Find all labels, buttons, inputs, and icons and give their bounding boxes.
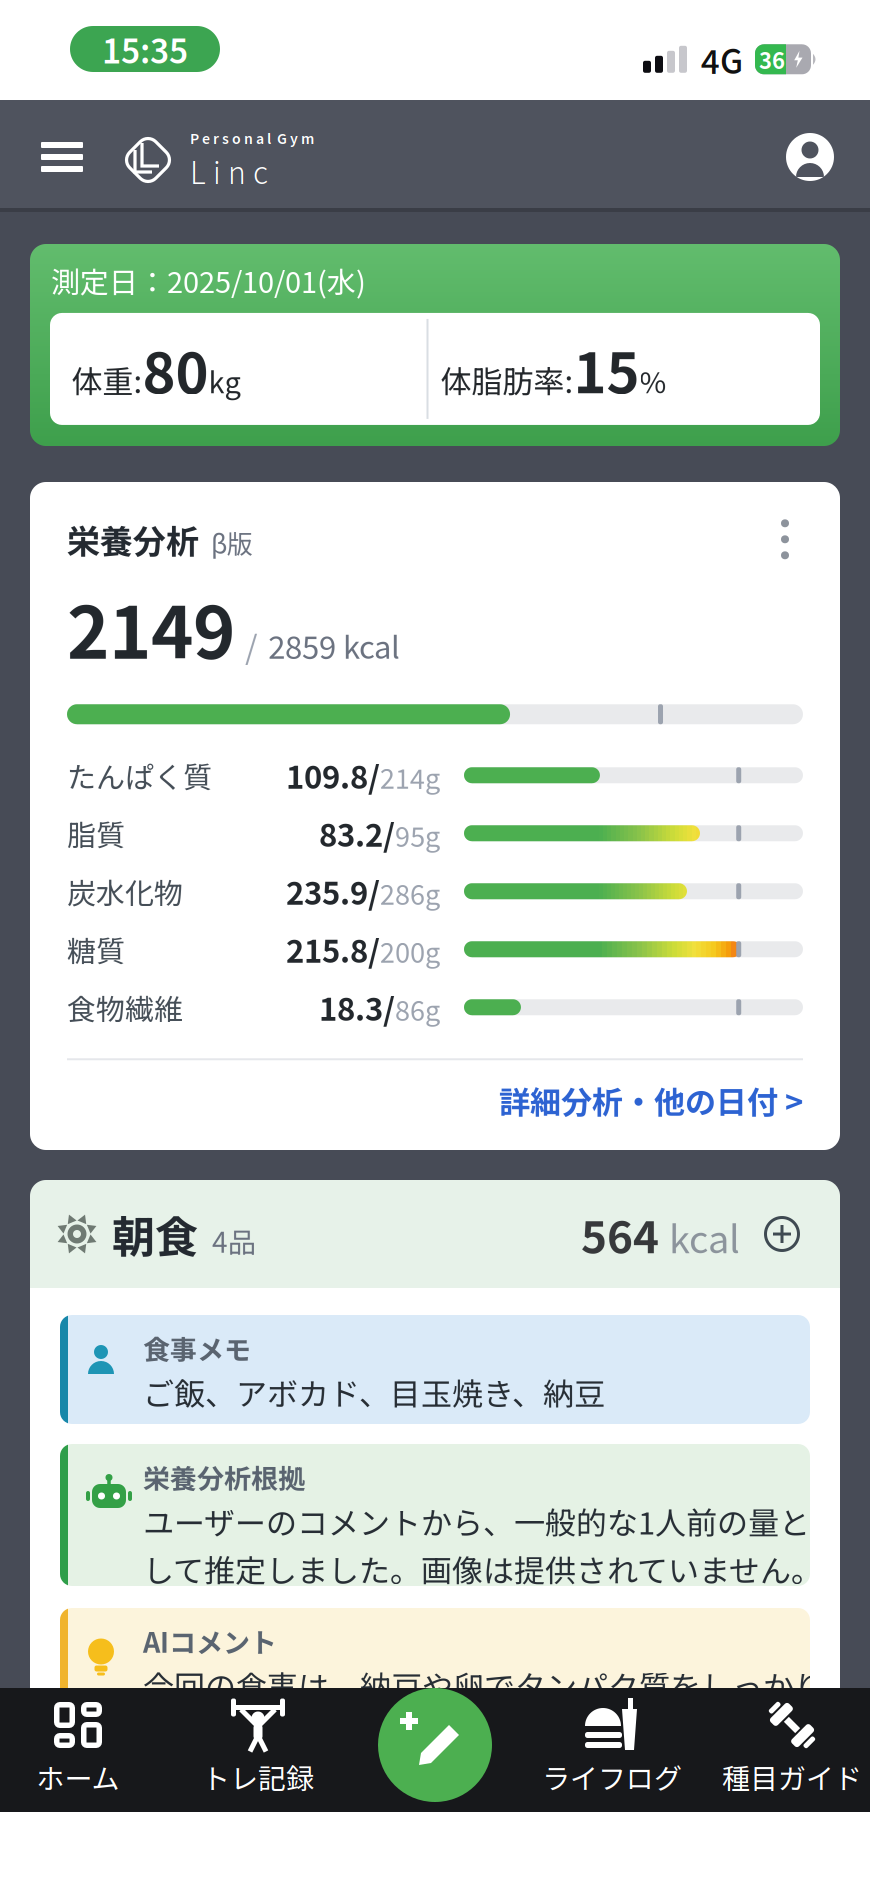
staticText: 体脂肪率:	[440, 358, 573, 402]
staticText: L i n c	[190, 150, 268, 192]
staticText: 今回の食事は、納豆や卵でタンパク質をしっかり とれています。	[143, 1663, 825, 1755]
staticText: ご飯、アボカド、目玉焼き、納豆	[143, 1370, 605, 1414]
button[interactable]: Menu	[0, 139, 83, 169]
staticText: 214g	[380, 758, 440, 796]
staticText: 200g	[380, 932, 440, 970]
button[interactable]: Add food	[740, 1216, 840, 1252]
staticText: 4品	[212, 1221, 256, 1260]
staticText: %	[639, 360, 666, 401]
staticText: 詳細分析・他の日付 >	[499, 1078, 803, 1122]
staticText: 栄養分析	[67, 516, 199, 563]
button[interactable]: 記録を追加	[360, 1688, 510, 1812]
staticText: ホーム	[36, 1757, 119, 1796]
staticText: 2859 kcal	[268, 623, 400, 667]
button[interactable]: More options	[781, 519, 803, 559]
staticText: 18.3/	[319, 985, 395, 1029]
staticText: 286g	[380, 874, 440, 912]
staticText: AIコメント	[143, 1622, 277, 1660]
staticText: 炭水化物	[67, 871, 183, 912]
staticText: 564	[581, 1203, 659, 1265]
button[interactable]: Account	[786, 130, 870, 178]
staticText: 種目ガイド	[722, 1757, 862, 1796]
staticText: 95g	[395, 816, 440, 854]
staticText: β版	[211, 524, 253, 561]
staticText: 36	[759, 44, 785, 75]
staticText: 食物繊維	[67, 987, 183, 1028]
staticText: 86g	[395, 990, 440, 1028]
staticText: kg	[208, 360, 240, 401]
staticText: 脂質	[67, 813, 125, 854]
staticText: kcal	[669, 1210, 740, 1263]
staticText: 体重:	[71, 358, 142, 402]
staticText: 朝食	[112, 1204, 198, 1264]
staticText: 測定日：2025/10/01(水)	[51, 260, 366, 301]
staticText: ユーザーのコメントから、一般的な1人前の量と して推定しました。画像は提供されて…	[143, 1499, 822, 1591]
staticText: 83.2/	[319, 811, 395, 855]
staticText: ライフログ	[542, 1757, 682, 1796]
staticText: /	[245, 622, 258, 667]
staticText: 109.8/	[286, 753, 380, 797]
staticText: 235.9/	[286, 869, 380, 913]
button[interactable]: 詳細分析・他の日付 >	[499, 1078, 803, 1122]
button[interactable]: 種目ガイド	[714, 1688, 870, 1812]
staticText: P e r s o n a l G y m	[190, 128, 314, 148]
staticText: トレ記録	[202, 1757, 314, 1796]
staticText: 4G	[701, 36, 743, 83]
staticText: 2149	[67, 577, 235, 678]
staticText: 15	[573, 329, 639, 408]
staticText: たんぱく質	[67, 755, 212, 796]
staticText: 215.8/	[286, 927, 380, 971]
staticText: 15:35	[102, 26, 188, 72]
staticText: 糖質	[67, 929, 125, 970]
button[interactable]: ホーム	[0, 1688, 156, 1812]
button[interactable]: トレ記録	[156, 1688, 360, 1812]
staticText: 食事メモ	[143, 1329, 251, 1367]
button[interactable]: ライフログ	[510, 1688, 714, 1812]
staticText: 80	[142, 329, 208, 408]
staticText: 栄養分析根拠	[143, 1458, 305, 1496]
